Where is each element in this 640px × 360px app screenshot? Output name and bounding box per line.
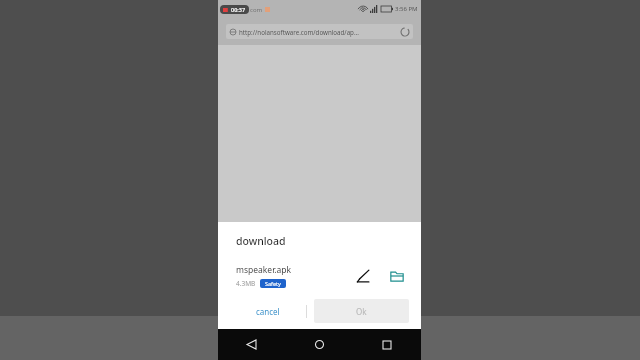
button[interactable]: Home bbox=[285, 329, 353, 360]
staticText: cancel bbox=[256, 306, 280, 317]
button[interactable]: Ok bbox=[314, 299, 409, 323]
button[interactable]: cancel bbox=[230, 299, 306, 323]
button[interactable]: Rename file bbox=[351, 264, 375, 288]
staticText: download bbox=[236, 234, 286, 248]
staticText: mspeaker.apk bbox=[236, 264, 292, 276]
staticText: 4.3MB bbox=[236, 279, 256, 288]
button[interactable]: Choose folder bbox=[385, 264, 409, 288]
staticText: http://nolansoftware.com/download/ap… bbox=[239, 28, 399, 36]
button[interactable]: Back bbox=[218, 329, 285, 360]
staticText: com bbox=[250, 6, 263, 14]
staticText: 00:37 bbox=[231, 6, 246, 13]
button[interactable]: Recents bbox=[353, 329, 421, 360]
button[interactable]: http://nolansoftware.com/download/ap… bbox=[226, 24, 413, 39]
staticText: Ok bbox=[356, 306, 367, 317]
staticText: 3:56 PM bbox=[395, 5, 418, 13]
staticText: Safety bbox=[265, 280, 281, 287]
